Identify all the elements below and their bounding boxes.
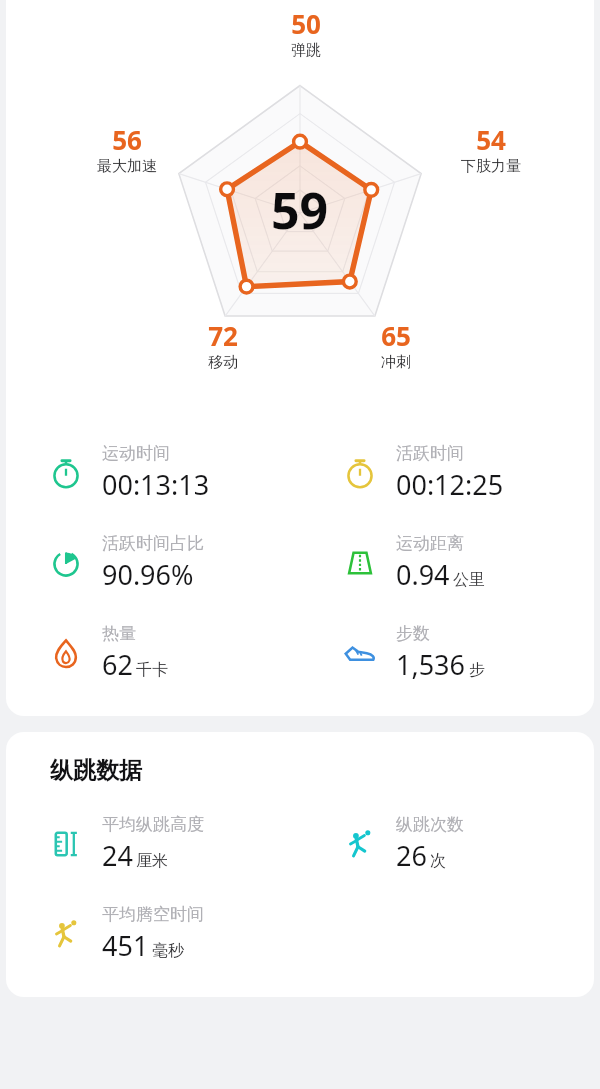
staticText: 平均腾空时间 bbox=[102, 904, 204, 925]
staticText: 纵跳数据 bbox=[50, 756, 142, 785]
button[interactable]: 平均腾空时间 bbox=[6, 901, 300, 967]
button[interactable]: 活跃时间 bbox=[300, 440, 594, 506]
other: 平均纵跳高度 bbox=[46, 824, 86, 864]
other: 运动时间 bbox=[46, 453, 86, 493]
staticText: 59 bbox=[271, 176, 329, 244]
staticText: 26 bbox=[396, 837, 427, 874]
staticText: 50 bbox=[291, 6, 321, 41]
other: 运动距离 bbox=[340, 543, 380, 583]
staticText: 步 bbox=[469, 660, 485, 680]
staticText: 00:12:25 bbox=[396, 466, 504, 503]
staticText: 运动距离 bbox=[396, 533, 464, 554]
button[interactable]: 运动时间 bbox=[6, 440, 300, 506]
staticText: 下肢力量 bbox=[461, 157, 521, 176]
button[interactable]: 热量 bbox=[6, 620, 300, 686]
button[interactable]: 运动距离 bbox=[300, 530, 594, 596]
staticText: 62 bbox=[102, 646, 133, 683]
staticText: 451 bbox=[102, 927, 149, 964]
staticText: 次 bbox=[430, 851, 446, 871]
staticText: 活跃时间占比 bbox=[102, 533, 204, 554]
staticText: 弹跳 bbox=[291, 41, 321, 60]
other: 纵跳次数 bbox=[340, 824, 380, 864]
staticText: 冲刺 bbox=[381, 353, 411, 372]
other: 平均腾空时间 bbox=[46, 914, 86, 954]
staticText: 毫秒 bbox=[152, 941, 184, 961]
button[interactable]: 步数 bbox=[300, 620, 594, 686]
button[interactable]: 平均纵跳高度 bbox=[6, 811, 300, 877]
other: 活跃时间占比 bbox=[46, 543, 86, 583]
staticText: 步数 bbox=[396, 623, 430, 644]
staticText: 热量 bbox=[102, 623, 136, 644]
staticText: 移动 bbox=[208, 353, 238, 372]
staticText: 65 bbox=[381, 318, 411, 353]
staticText: 厘米 bbox=[136, 851, 168, 871]
staticText: 活跃时间 bbox=[396, 443, 464, 464]
staticText: 54 bbox=[476, 122, 506, 157]
staticText: 90.96% bbox=[102, 556, 194, 593]
staticText: 1,536 bbox=[396, 646, 466, 683]
staticText: 24 bbox=[102, 837, 133, 874]
other: 热量 bbox=[46, 633, 86, 673]
staticText: 平均纵跳高度 bbox=[102, 814, 204, 835]
staticText: 00:13:13 bbox=[102, 466, 210, 503]
staticText: 千卡 bbox=[136, 660, 168, 680]
button[interactable]: 活跃时间占比 bbox=[6, 530, 300, 596]
button[interactable]: 纵跳次数 bbox=[300, 811, 594, 877]
other: 活跃时间 bbox=[340, 453, 380, 493]
staticText: 公里 bbox=[453, 570, 485, 590]
staticText: 0.94 bbox=[396, 556, 450, 593]
staticText: 最大加速 bbox=[97, 157, 157, 176]
staticText: 纵跳次数 bbox=[396, 814, 464, 835]
staticText: 72 bbox=[208, 318, 238, 353]
other: 步数 bbox=[340, 633, 380, 673]
staticText: 运动时间 bbox=[102, 443, 170, 464]
staticText: 56 bbox=[112, 122, 142, 157]
